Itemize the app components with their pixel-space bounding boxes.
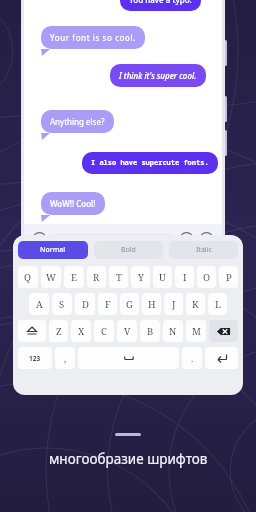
button[interactable]: I xyxy=(175,266,194,288)
staticText: L xyxy=(215,298,221,311)
staticText: P xyxy=(226,271,232,284)
button[interactable]: B xyxy=(140,320,160,342)
staticText: Normal xyxy=(40,245,66,255)
staticText: G xyxy=(126,298,133,311)
staticText: R xyxy=(93,271,100,284)
button[interactable]: Your font is so cool. xyxy=(41,26,145,49)
staticText: Italic xyxy=(196,245,212,255)
button[interactable]: Space xyxy=(78,347,179,369)
button[interactable]: L xyxy=(208,293,227,315)
button[interactable]: X xyxy=(71,320,91,342)
button[interactable]: P xyxy=(219,266,238,288)
button[interactable]: , xyxy=(55,347,75,369)
button[interactable]: C xyxy=(94,320,114,342)
button[interactable]: N xyxy=(163,320,183,342)
button[interactable]: M xyxy=(186,320,206,342)
button[interactable]: D xyxy=(75,293,95,315)
button[interactable]: Keyboard xyxy=(179,232,194,247)
button[interactable]: Voice xyxy=(32,232,47,247)
button[interactable]: Enter xyxy=(205,347,238,369)
button[interactable]: Add xyxy=(199,232,214,247)
button[interactable]: Shift xyxy=(18,320,46,342)
staticText: W xyxy=(46,271,56,284)
button[interactable]: Backspace xyxy=(209,320,238,342)
button[interactable]: WoW!! Cool! xyxy=(41,192,105,215)
button[interactable]: Italic xyxy=(169,241,238,259)
staticText: K xyxy=(192,298,199,311)
button[interactable]: 123 xyxy=(18,347,52,369)
staticText: . xyxy=(191,352,194,364)
button[interactable]: Z xyxy=(49,320,68,342)
staticText: Anything else? xyxy=(50,116,105,127)
staticText: D xyxy=(82,298,89,311)
button[interactable]: U xyxy=(153,266,172,288)
button[interactable]: G xyxy=(120,293,139,315)
button[interactable]: K xyxy=(186,293,205,315)
staticText: E xyxy=(71,271,77,284)
staticText: X xyxy=(78,325,85,338)
button[interactable]: You have a typo. xyxy=(120,0,201,11)
staticText: H xyxy=(148,298,156,311)
staticText: F xyxy=(105,298,111,311)
staticText: V xyxy=(124,325,131,338)
staticText: Z xyxy=(56,325,62,338)
staticText: You have a typo. xyxy=(129,0,192,5)
staticText: , xyxy=(64,352,67,364)
staticText: S xyxy=(59,298,65,311)
button[interactable]: R xyxy=(87,266,106,288)
button[interactable]: A xyxy=(29,293,49,315)
button[interactable]: F xyxy=(98,293,117,315)
button[interactable]: E xyxy=(64,266,84,288)
staticText: I think it's super cool. xyxy=(119,70,197,81)
button[interactable]: Y xyxy=(131,266,150,288)
button[interactable]: Normal xyxy=(18,241,88,259)
button[interactable]: I also have supercute fonts. xyxy=(82,152,218,174)
button[interactable]: Q xyxy=(18,266,38,288)
button[interactable]: Anything else? xyxy=(41,110,114,133)
staticText: WoW!! Cool! xyxy=(50,198,96,209)
staticText: Your font is so cool. xyxy=(50,32,136,43)
staticText: B xyxy=(147,325,154,338)
button[interactable]: Bold xyxy=(94,241,163,259)
button[interactable]: T xyxy=(109,266,128,288)
button[interactable]: O xyxy=(197,266,216,288)
staticText: многообразие шрифтов xyxy=(49,450,208,468)
button[interactable]: S xyxy=(52,293,72,315)
button[interactable]: V xyxy=(117,320,137,342)
staticText: T xyxy=(116,271,122,284)
staticText: C xyxy=(101,325,107,338)
staticText: Q xyxy=(24,271,32,284)
button[interactable] xyxy=(53,233,173,247)
button[interactable]: J xyxy=(164,293,183,315)
staticText: 123 xyxy=(29,354,41,363)
staticText: A xyxy=(36,298,43,311)
staticText: J xyxy=(172,298,176,311)
button[interactable]: W xyxy=(41,266,61,288)
staticText: N xyxy=(169,325,177,338)
staticText: I xyxy=(183,271,187,284)
staticText: I also have supercute fonts. xyxy=(91,158,209,168)
staticText: Y xyxy=(138,271,144,284)
staticText: O xyxy=(203,271,211,284)
button[interactable]: . xyxy=(182,347,202,369)
button[interactable]: I think it's super cool. xyxy=(110,64,206,87)
staticText: Bold xyxy=(121,245,136,255)
staticText: U xyxy=(159,271,166,284)
staticText: M xyxy=(192,325,201,338)
button[interactable]: H xyxy=(142,293,161,315)
